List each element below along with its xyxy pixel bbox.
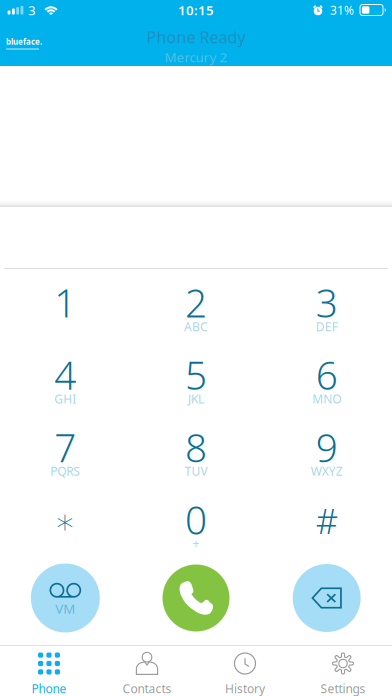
staticText: 8: [185, 421, 207, 473]
staticText: GHI: [54, 391, 76, 407]
button[interactable]: 6: [261, 344, 392, 416]
button[interactable]: 8: [131, 416, 261, 488]
staticText: MNO: [312, 391, 341, 407]
staticText: #: [316, 497, 338, 543]
staticText: 10:15: [178, 1, 214, 19]
staticText: Settings: [320, 680, 365, 696]
staticText: Contacts: [122, 680, 171, 696]
staticText: 31%: [330, 2, 354, 18]
staticText: DEF: [316, 319, 338, 334]
staticText: blueface.: [6, 36, 42, 47]
staticText: 3: [28, 1, 36, 19]
staticText: Mercury 2: [164, 48, 227, 66]
staticText: TUV: [184, 463, 207, 479]
staticText: ∗: [54, 502, 76, 541]
button[interactable]: 4: [0, 344, 131, 416]
staticText: 7: [54, 421, 76, 473]
staticText: 0: [185, 494, 207, 545]
staticText: ABC: [184, 319, 208, 334]
button[interactable]: 1: [0, 271, 131, 344]
staticText: 6: [316, 349, 338, 400]
button[interactable]: 0: [131, 488, 261, 561]
staticText: History: [225, 680, 265, 696]
staticText: WXYZ: [311, 463, 343, 479]
button[interactable]: 9: [261, 416, 392, 488]
staticText: PQRS: [50, 463, 80, 479]
staticText: 4: [54, 349, 76, 400]
staticText: +: [192, 535, 199, 551]
staticText: 2: [185, 277, 207, 328]
button[interactable]: 2: [131, 271, 261, 344]
button[interactable]: Contacts: [98, 646, 196, 696]
button[interactable]: Voicemail: [0, 555, 131, 641]
button[interactable]: 5: [131, 344, 261, 416]
staticText: VM: [55, 600, 75, 617]
button[interactable]: #: [261, 488, 392, 561]
button[interactable]: Delete: [261, 555, 392, 641]
staticText: 3: [316, 277, 338, 328]
button[interactable]: Call: [131, 555, 261, 641]
staticText: 9: [316, 421, 338, 473]
button[interactable]: Settings: [294, 646, 392, 696]
staticText: 1: [54, 277, 76, 328]
staticText: JKL: [188, 391, 204, 407]
button[interactable]: ∗: [0, 488, 131, 561]
staticText: Phone: [31, 680, 66, 696]
staticText: 5: [185, 349, 207, 400]
button[interactable]: 7: [0, 416, 131, 488]
button[interactable]: History: [196, 646, 294, 696]
staticText: Phone Ready: [146, 26, 245, 48]
button[interactable]: Phone: [0, 646, 98, 696]
button[interactable]: 3: [261, 271, 392, 344]
